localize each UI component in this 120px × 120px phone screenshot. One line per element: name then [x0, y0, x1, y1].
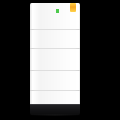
button[interactable] — [30, 71, 80, 90]
button[interactable]: Status indicator — [30, 3, 80, 29]
button[interactable]: Alert badge — [70, 3, 76, 12]
button[interactable] — [30, 30, 80, 48]
button[interactable] — [30, 49, 80, 70]
button[interactable] — [30, 104, 80, 115]
button[interactable]: Status indicator — [30, 3, 80, 105]
button[interactable] — [30, 91, 80, 105]
